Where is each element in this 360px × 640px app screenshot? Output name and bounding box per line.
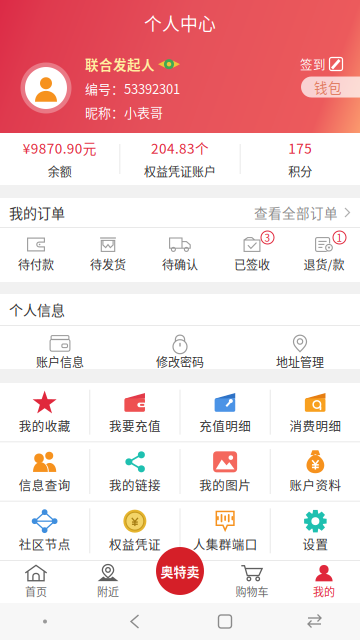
staticText: 购物车 xyxy=(235,583,268,599)
staticText: 人集群端口 xyxy=(193,535,258,553)
staticText: 我的订单 xyxy=(9,202,65,223)
button[interactable]: 人集群端口 xyxy=(180,502,270,560)
staticText: 我的 xyxy=(313,583,335,599)
button[interactable]: 地址管理 xyxy=(240,326,360,369)
staticText: 我的收藏 xyxy=(19,416,71,435)
button[interactable]: 待付款 xyxy=(0,228,72,282)
staticText: 编号：53392301 xyxy=(85,79,180,98)
staticText: 我要充值 xyxy=(109,416,161,435)
staticText: 信息查询 xyxy=(19,476,71,494)
button[interactable]: 待确认 xyxy=(144,228,216,282)
staticText: 1 xyxy=(336,230,342,245)
button[interactable]: 购物车 xyxy=(216,561,288,603)
button[interactable]: 账户资料 xyxy=(271,442,360,501)
staticText: 个人信息 xyxy=(9,299,65,320)
button[interactable]: 签到 xyxy=(296,55,344,73)
staticText: 权益凭证账户 xyxy=(144,163,216,180)
button[interactable]: 查看全部订单 xyxy=(254,203,351,222)
staticText: 奥特卖 xyxy=(160,562,199,580)
staticText: 消费明细 xyxy=(289,416,341,435)
staticText: 待确认 xyxy=(162,256,198,273)
button[interactable]: 1 xyxy=(288,228,360,282)
button[interactable]: 权益凭证 xyxy=(90,502,179,560)
staticText: 账户资料 xyxy=(289,476,341,494)
staticText: 首页 xyxy=(25,583,47,599)
button[interactable]: 社区节点 xyxy=(0,502,89,560)
staticText: 待发货 xyxy=(90,256,126,273)
button[interactable]: 奥特卖 xyxy=(156,547,204,595)
button[interactable]: 信息查询 xyxy=(0,442,89,501)
staticText: 我的图片 xyxy=(199,476,251,494)
staticText: 修改密码 xyxy=(156,353,204,370)
staticText: 充值明细 xyxy=(199,416,251,435)
button[interactable]: 首页 xyxy=(0,561,72,603)
staticText: 待付款 xyxy=(18,256,54,273)
staticText: 已签收 xyxy=(234,256,270,273)
button[interactable]: 我的图片 xyxy=(180,442,270,501)
staticText: 积分 xyxy=(288,163,312,180)
staticText: 钱包 xyxy=(314,77,342,97)
staticText: 查看全部订单 xyxy=(254,203,338,222)
staticText: 设置 xyxy=(302,535,328,553)
button[interactable]: 消费明细 xyxy=(271,383,360,441)
staticText: 社区节点 xyxy=(19,535,71,553)
staticText: 余额 xyxy=(48,163,72,180)
staticText: 3 xyxy=(264,230,270,245)
button[interactable]: 我要充值 xyxy=(90,383,179,441)
staticText: 附近 xyxy=(97,583,119,599)
button[interactable]: 设置 xyxy=(271,502,360,560)
staticText: 联合发起人 xyxy=(85,54,155,74)
staticText: 我的链接 xyxy=(109,476,161,494)
button[interactable]: 3 xyxy=(216,228,288,282)
staticText: 签到 xyxy=(300,55,326,73)
staticText: 账户信息 xyxy=(36,353,84,370)
button[interactable]: 附近 xyxy=(72,561,144,603)
button[interactable]: 我的 xyxy=(288,561,360,603)
button[interactable]: 充值明细 xyxy=(180,383,270,441)
button[interactable]: 修改密码 xyxy=(120,326,240,369)
staticText: 个人中心 xyxy=(144,10,216,36)
button[interactable]: 待发货 xyxy=(72,228,144,282)
staticText: ¥9870.90元 xyxy=(23,138,97,158)
staticText: 退货/款 xyxy=(303,256,344,273)
staticText: 204.83个 xyxy=(151,138,209,158)
staticText: 权益凭证 xyxy=(109,535,161,553)
staticText: 175 xyxy=(288,138,312,158)
button[interactable]: 账户信息 xyxy=(0,326,120,369)
button[interactable]: 我的收藏 xyxy=(0,383,89,441)
button[interactable]: 钱包 xyxy=(301,76,360,97)
staticText: 昵称：小表哥 xyxy=(85,103,163,122)
staticText: 地址管理 xyxy=(276,353,324,370)
button[interactable]: 我的链接 xyxy=(90,442,179,501)
